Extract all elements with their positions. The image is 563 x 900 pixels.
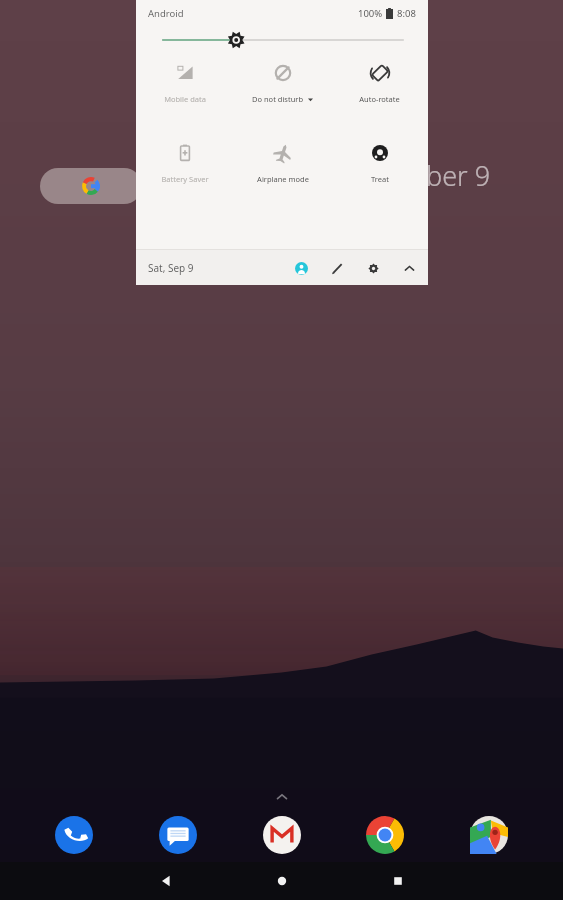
staticText: Battery Saver (161, 174, 209, 184)
button[interactable]: Messages (156, 813, 200, 857)
staticText: Auto-rotate (359, 94, 400, 104)
button[interactable]: Edit (326, 257, 348, 279)
button[interactable]: Gmail (260, 813, 304, 857)
staticText: Do not disturb (252, 94, 303, 104)
button[interactable]: Brightness (136, 26, 428, 54)
button[interactable]: September 9 (330, 155, 493, 211)
button[interactable]: Battery Saver (136, 140, 234, 184)
button[interactable]: Do not disturb (234, 60, 331, 104)
button[interactable]: Google Search (40, 168, 142, 204)
button[interactable]: Maps (467, 813, 511, 857)
button[interactable]: Settings (362, 257, 384, 279)
staticText: 8:08 (397, 7, 416, 20)
button[interactable]: Home (263, 862, 301, 900)
button[interactable]: Collapse (398, 257, 420, 279)
button[interactable]: Auto-rotate (331, 60, 428, 104)
staticText: 100% (358, 7, 383, 20)
staticText: Sat, Sep 9 (148, 261, 194, 275)
staticText: September 9 (332, 157, 491, 194)
button[interactable]: Recents (379, 862, 417, 900)
staticText: Mobile data (164, 94, 206, 104)
button[interactable]: Mobile data (136, 60, 234, 104)
button[interactable]: User (290, 257, 312, 279)
staticText: Treat (371, 174, 389, 184)
button[interactable]: Chrome (363, 813, 407, 857)
staticText: Android (148, 7, 184, 20)
button[interactable]: Open app drawer (269, 784, 295, 810)
button[interactable]: Treat (331, 140, 428, 184)
button[interactable]: Airplane mode (234, 140, 331, 184)
staticText: Airplane mode (257, 174, 309, 184)
button[interactable]: Phone (52, 813, 96, 857)
button[interactable]: Back (147, 862, 185, 900)
